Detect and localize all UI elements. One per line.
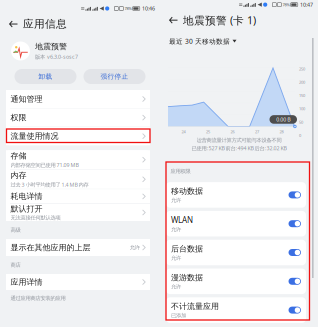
button[interactable]: 显示在其他应用的上层 [6,239,150,256]
staticText: 不计流量应用 [171,301,219,311]
button[interactable]: 应用详情 [6,274,150,290]
staticText: 版本 v6.3.0-sosc7 [35,53,78,60]
staticText: 最近 30 天移动数据 [169,37,230,46]
staticText: 显示在其他应用的上层 [10,243,90,252]
button[interactable]: 后台数据 [166,240,306,265]
button[interactable]: 内存 [6,170,150,189]
staticText: 移动数据 [171,186,203,196]
staticText: 10:47 [300,1,313,8]
staticText: 商店 [10,262,20,268]
staticText: 内存 [10,170,26,180]
staticText: 后台数据 [171,244,203,254]
button[interactable]: 存储 [6,150,150,169]
button[interactable]: 耗电详情 [6,189,150,203]
staticText: 10:46 [142,5,155,12]
staticText: 卸载 [38,72,52,81]
button[interactable]: 默认打开 [6,204,150,221]
staticText: 27 [255,129,259,134]
staticText: 200 [299,79,305,85]
staticText: 已添加 [171,312,186,319]
button[interactable]: 卸载 [14,69,76,84]
staticText: 允许 [130,244,140,251]
staticText: 高级 [10,227,20,233]
staticText: 流量使用情况 [10,131,58,141]
staticText: 应用详情 [10,277,42,287]
button[interactable]: 权限 [6,109,150,127]
staticText: 通过应用商店安装的应用 [10,295,65,302]
button[interactable]: 移动数据 [166,182,306,208]
staticText: 无法直接任何默认选项 [10,214,60,221]
staticText: 允许 [171,197,181,204]
staticText: 允许 [171,283,181,290]
staticText: 100 [299,106,305,111]
staticText: 允许 [171,226,181,233]
staticText: 24 [181,129,185,134]
staticText: 存储 [10,151,26,161]
staticText: 允许 [171,255,181,261]
staticText: 28 [279,129,283,134]
button[interactable]: 强行停止 [83,69,145,84]
staticText: 25 [206,129,210,134]
button[interactable]: 返回 [9,20,17,28]
button[interactable]: 不计流量应用 [166,297,306,323]
staticText: 78% [124,6,131,11]
staticText: 0 [299,133,301,138]
staticText: 耗电详情 [10,191,42,201]
staticText: 内部存储空间已使用 71.09 MB [10,161,78,169]
staticText: 地震预警 (卡 1) [183,13,256,27]
staticText: 通知管理 [10,94,42,104]
staticText: 250 [299,66,305,71]
staticText: 权限 [10,113,26,122]
staticText: 强行停止 [100,72,128,81]
staticText: 0.00 B [276,116,290,123]
staticText: WLAN [171,215,193,225]
staticText: 漫游数据 [171,273,203,282]
staticText: 默认打开 [10,204,42,214]
button[interactable]: 通知管理 [6,90,150,108]
staticText: 应用权限 [170,168,190,174]
button[interactable]: 返回 [169,16,177,24]
staticText: 应用信息 [23,17,67,30]
button[interactable]: 流量使用情况 [6,127,150,145]
button[interactable]: 漫游数据 [166,269,306,294]
staticText: 78% [282,2,289,7]
staticText: 50 [299,119,303,125]
button[interactable]: WLAN [166,211,306,236]
staticText: 运营商流量计算方式可能与本设备不同 [196,137,281,143]
staticText: 已使用: 527 KB 前台: 494 KB 后台: 32.02 KB [191,145,286,152]
button[interactable]: 最近 30 天移动数据 [160,32,318,50]
staticText: 地震预警 [35,42,67,51]
staticText: 26 [230,129,234,134]
staticText: 150 [299,93,305,98]
staticText: 过去 3 小时平均使用了 1.4 MB 内存 [10,181,88,188]
